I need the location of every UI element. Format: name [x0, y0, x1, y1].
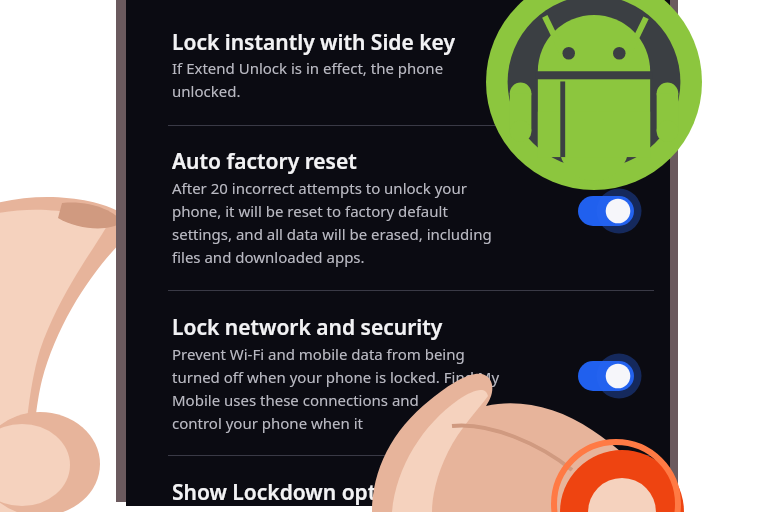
- button[interactable]: [128, 297, 668, 447]
- button[interactable]: Toggle on: [578, 361, 634, 391]
- staticText: Show Lockdown option: [172, 478, 409, 507]
- other: Android logo: [486, 0, 702, 190]
- button[interactable]: [128, 132, 668, 282]
- staticText: Auto factory reset: [172, 147, 357, 176]
- button[interactable]: Toggle on: [578, 196, 634, 226]
- button[interactable]: [128, 462, 668, 512]
- button[interactable]: [126, 0, 670, 506]
- button[interactable]: [128, 14, 668, 122]
- staticText: Lock instantly with Side key: [172, 28, 455, 57]
- staticText: Prevent Wi-Fi and mobile data from being…: [172, 344, 500, 433]
- staticText: After 20 incorrect attempts to unlock yo…: [172, 178, 492, 267]
- staticText: Lock network and security: [172, 313, 443, 342]
- staticText: If Extend Unlock is in effect, the phone…: [172, 58, 444, 101]
